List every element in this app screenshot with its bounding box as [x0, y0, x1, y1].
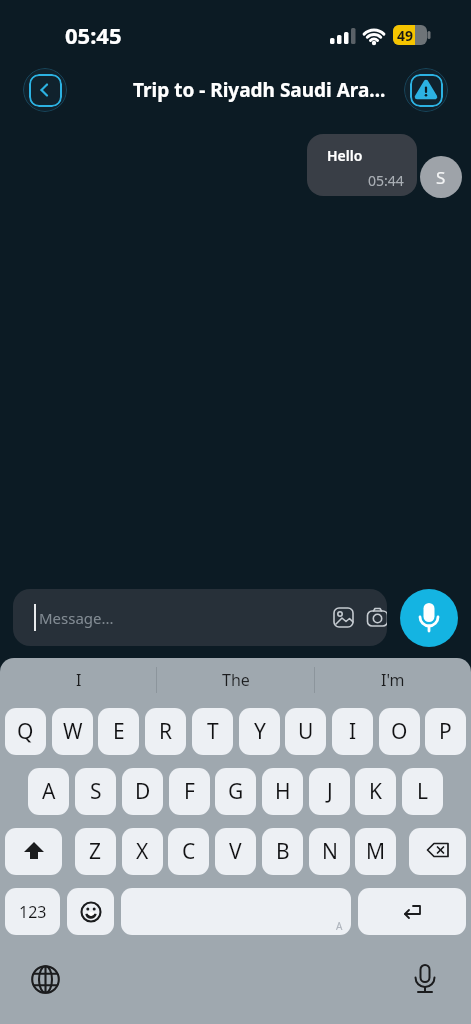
- staticText: R: [159, 717, 173, 746]
- staticText: F: [184, 777, 195, 806]
- staticText: 05:45: [65, 20, 122, 50]
- button[interactable]: Q: [5, 708, 46, 755]
- button[interactable]: [409, 828, 466, 875]
- button[interactable]: N: [309, 828, 350, 875]
- button[interactable]: S: [75, 768, 116, 815]
- staticText: S: [90, 777, 102, 806]
- button[interactable]: E: [98, 708, 139, 755]
- staticText: H: [275, 777, 291, 806]
- staticText: I: [349, 717, 357, 746]
- staticText: Y: [254, 717, 266, 746]
- staticText: N: [322, 837, 338, 866]
- staticText: P: [439, 717, 452, 746]
- staticText: 123: [19, 901, 47, 923]
- staticText: Q: [17, 717, 34, 746]
- button[interactable]: C: [168, 828, 209, 875]
- button[interactable]: H: [262, 768, 303, 815]
- staticText: B: [276, 837, 290, 866]
- staticText: I'm: [381, 669, 405, 691]
- staticText: X: [136, 837, 149, 866]
- button[interactable]: D: [122, 768, 163, 815]
- staticText: 05:44: [368, 171, 404, 190]
- staticText: Trip to - Riyadh Saudi Ara...: [133, 77, 386, 103]
- button[interactable]: B: [262, 828, 303, 875]
- staticText: V: [229, 837, 242, 866]
- button[interactable]: [400, 589, 458, 647]
- staticText: Z: [89, 837, 102, 866]
- button[interactable]: W: [52, 708, 93, 755]
- button[interactable]: [25, 959, 65, 999]
- button[interactable]: A: [28, 768, 69, 815]
- staticText: W: [63, 717, 83, 746]
- button[interactable]: A: [121, 888, 351, 935]
- staticText: The: [222, 669, 250, 691]
- staticText: A: [42, 777, 56, 806]
- button[interactable]: [358, 888, 466, 935]
- button[interactable]: [404, 68, 448, 112]
- staticText: Message...: [39, 608, 114, 628]
- button[interactable]: F: [169, 768, 210, 815]
- button[interactable]: R: [145, 708, 186, 755]
- button[interactable]: X: [122, 828, 163, 875]
- button[interactable]: [23, 68, 67, 112]
- staticText: J: [327, 777, 333, 806]
- button[interactable]: K: [355, 768, 396, 815]
- button[interactable]: P: [425, 708, 466, 755]
- button[interactable]: [405, 959, 445, 999]
- button[interactable]: I'm: [314, 664, 471, 696]
- button[interactable]: J: [309, 768, 350, 815]
- staticText: I: [76, 669, 82, 691]
- button[interactable]: V: [215, 828, 256, 875]
- staticText: E: [113, 717, 125, 746]
- staticText: A: [336, 919, 343, 933]
- button[interactable]: G: [215, 768, 256, 815]
- staticText: G: [228, 777, 244, 806]
- button[interactable]: T: [192, 708, 233, 755]
- staticText: L: [417, 777, 429, 806]
- button[interactable]: L: [402, 768, 443, 815]
- button[interactable]: U: [285, 708, 326, 755]
- staticText: Hello: [327, 146, 363, 165]
- button[interactable]: Z: [75, 828, 116, 875]
- button[interactable]: O: [379, 708, 420, 755]
- staticText: M: [366, 837, 386, 866]
- staticText: 49: [397, 26, 414, 45]
- button[interactable]: M: [355, 828, 396, 875]
- button[interactable]: Message...: [13, 589, 387, 646]
- button[interactable]: [5, 828, 62, 875]
- button[interactable]: Y: [239, 708, 280, 755]
- staticText: T: [207, 717, 219, 746]
- button[interactable]: The: [157, 664, 314, 696]
- button[interactable]: 123: [5, 888, 60, 935]
- staticText: S: [436, 166, 446, 189]
- staticText: D: [135, 777, 151, 806]
- staticText: K: [369, 777, 382, 806]
- button[interactable]: [67, 888, 114, 935]
- button[interactable]: I: [0, 664, 157, 696]
- button[interactable]: I: [332, 708, 373, 755]
- staticText: C: [182, 837, 196, 866]
- staticText: O: [391, 717, 408, 746]
- staticText: U: [298, 717, 314, 746]
